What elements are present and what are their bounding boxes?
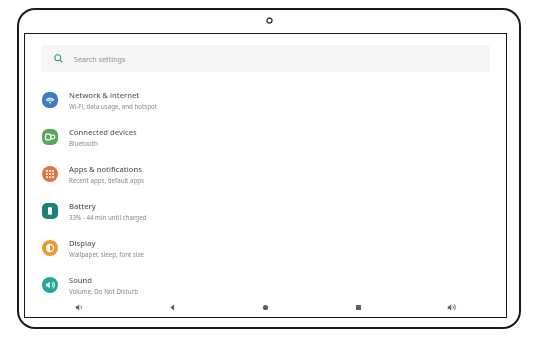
staticText: Display <box>69 238 96 248</box>
button[interactable]: Storage <box>25 303 506 317</box>
staticText: Battery <box>69 201 96 211</box>
staticText: Network & internet <box>69 90 140 100</box>
staticText: 33% - 44 min until charged <box>69 213 147 221</box>
button[interactable]: Battery <box>25 192 506 229</box>
staticText: Sound <box>69 275 93 285</box>
button[interactable]: Back <box>162 298 182 317</box>
button[interactable]: Network & internet <box>25 81 506 118</box>
staticText: Apps & notifications <box>69 164 142 174</box>
staticText: Volume, Do Not Disturb <box>69 287 138 295</box>
staticText: Wi-Fi, data usage, and hotspot <box>69 102 158 110</box>
button[interactable]: Volume down <box>69 298 89 317</box>
button[interactable]: Apps & notifications <box>25 155 506 192</box>
button[interactable]: Volume up <box>441 298 461 317</box>
staticText: Connected devices <box>69 127 137 137</box>
staticText: Wallpaper, sleep, font size <box>69 250 144 258</box>
staticText: Search settings <box>74 54 126 64</box>
button[interactable]: Recent apps <box>348 298 368 317</box>
button[interactable]: Connected devices <box>25 118 506 155</box>
button[interactable]: Sound <box>25 266 506 303</box>
staticText: Bluetooth <box>69 139 98 147</box>
staticText: Recent apps, default apps <box>69 176 144 184</box>
button[interactable]: Search settings <box>41 45 490 72</box>
button[interactable]: Home <box>255 298 275 317</box>
staticText: Storage <box>69 303 96 313</box>
button[interactable]: Display <box>25 229 506 266</box>
